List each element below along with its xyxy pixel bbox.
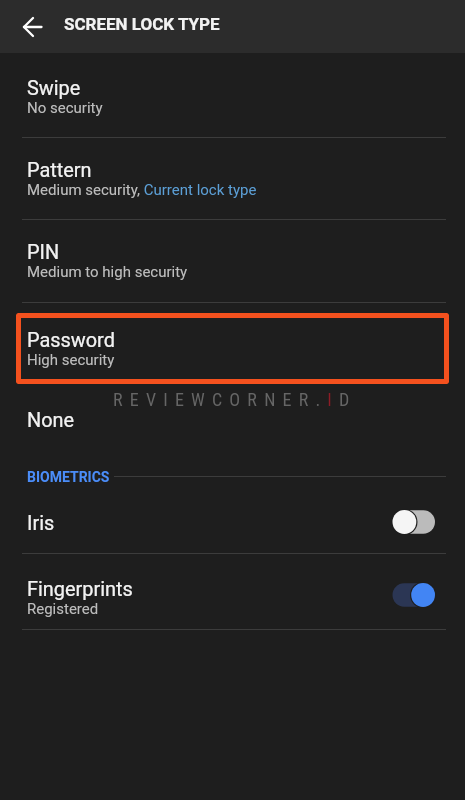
staticText: None — [27, 409, 75, 432]
staticText: Iris — [27, 512, 55, 535]
staticText: High security — [27, 351, 115, 369]
button[interactable]: Pattern — [0, 154, 465, 219]
button[interactable]: Iris — [0, 507, 465, 553]
button[interactable]: Fingerprints — [0, 573, 465, 629]
staticText: BIOMETRICS — [27, 469, 110, 485]
button[interactable]: PIN — [0, 236, 465, 302]
button[interactable]: Back — [14, 9, 50, 45]
staticText: Pattern — [27, 159, 92, 182]
staticText: SCREEN LOCK TYPE — [64, 14, 220, 34]
button[interactable]: Switch on — [391, 581, 436, 609]
staticText: Medium to high security — [27, 263, 188, 281]
staticText: Registered — [27, 600, 99, 618]
staticText: No security — [27, 99, 103, 117]
button[interactable]: Switch off — [391, 508, 436, 536]
button[interactable]: Swipe — [0, 72, 465, 137]
button[interactable]: Password — [16, 313, 449, 384]
staticText: Swipe — [27, 77, 81, 100]
staticText: PIN — [27, 241, 60, 264]
button[interactable]: None — [0, 404, 465, 444]
staticText: Medium security, Current lock type — [27, 181, 257, 199]
staticText: REVIEWCORNER.ID — [113, 389, 357, 410]
staticText: Fingerprints — [27, 578, 133, 601]
staticText: Password — [27, 329, 115, 352]
